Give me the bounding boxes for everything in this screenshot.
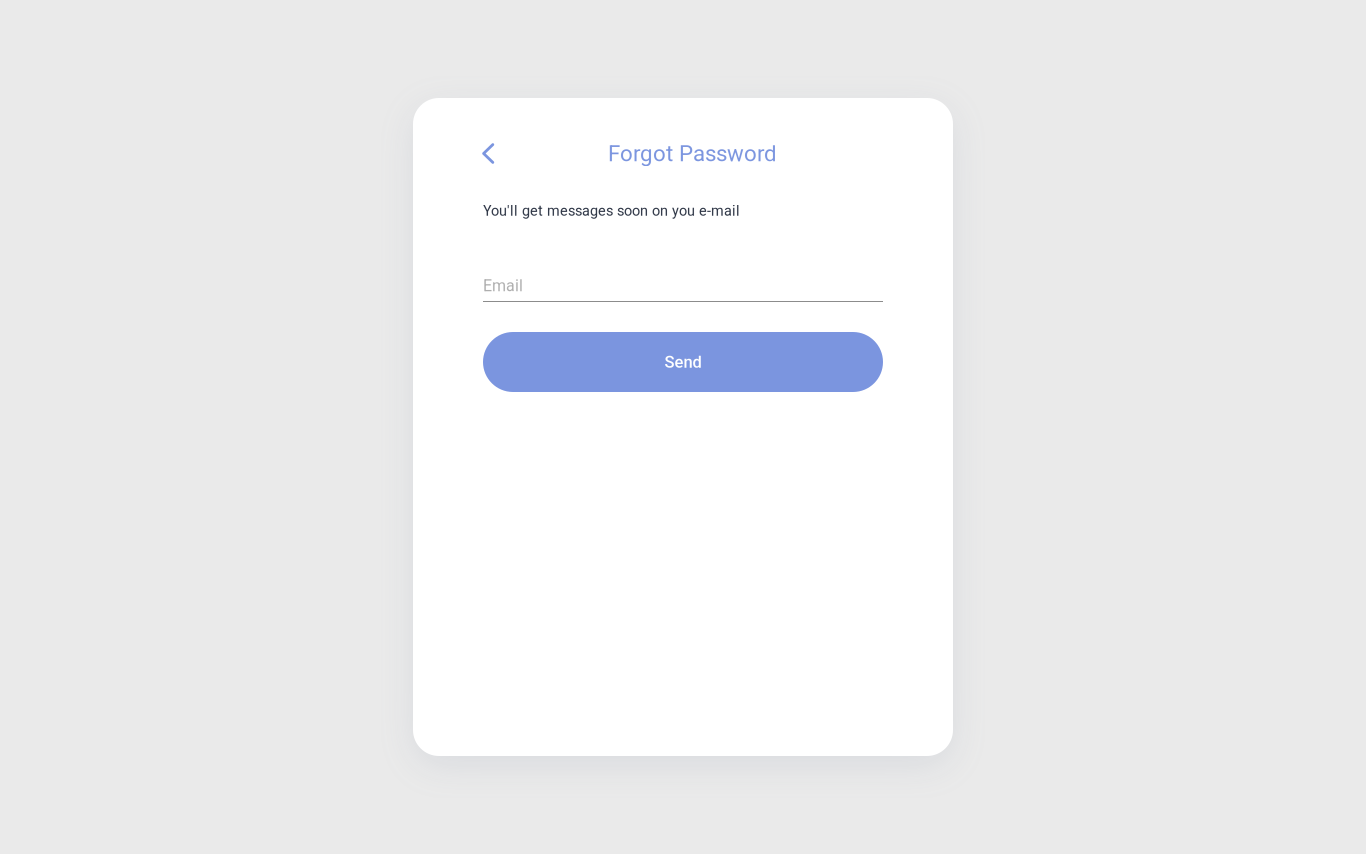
- staticText: Send: [664, 352, 701, 372]
- button[interactable]: Email: [483, 276, 883, 317]
- button[interactable]: Back: [466, 131, 510, 175]
- button[interactable]: Send: [483, 332, 883, 392]
- staticText: Email: [483, 276, 523, 295]
- staticText: Forgot Password: [608, 140, 777, 167]
- staticText: You'll get messages soon on you e-mail: [483, 202, 740, 219]
